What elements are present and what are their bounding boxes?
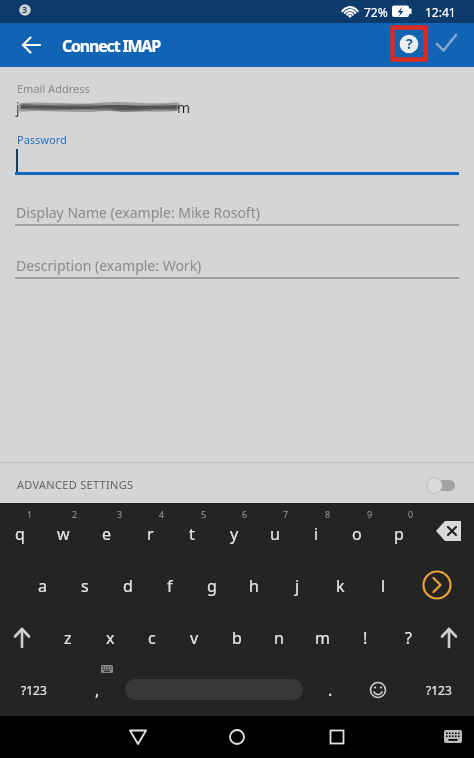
staticText: n [274, 627, 284, 649]
staticText: 1 [27, 508, 33, 520]
staticText: v [190, 627, 199, 649]
staticText: q [15, 523, 25, 545]
staticText: r [147, 523, 154, 545]
staticText: Connect IMAP [62, 35, 160, 57]
button[interactable]: ! [343, 614, 387, 662]
button[interactable] [0, 614, 44, 662]
button[interactable]: x [88, 614, 132, 662]
button[interactable] [428, 511, 472, 555]
button[interactable] [125, 679, 303, 700]
button[interactable] [0, 197, 474, 227]
staticText: l [381, 575, 386, 597]
button[interactable]: c [130, 614, 174, 662]
button[interactable] [0, 251, 474, 281]
button[interactable]: ? [386, 614, 430, 662]
staticText: ? [405, 627, 412, 649]
button[interactable] [0, 95, 474, 135]
staticText: d [123, 575, 133, 597]
button[interactable]: ? [393, 27, 425, 59]
staticText: h [249, 575, 259, 597]
staticText: ?123 [426, 682, 452, 698]
staticText: 12:41 [425, 4, 456, 20]
button[interactable]: ?123 [12, 666, 56, 714]
button[interactable]: p [377, 510, 421, 558]
staticText: 7 [283, 508, 289, 520]
staticText: j [295, 575, 300, 597]
button[interactable] [215, 716, 259, 758]
staticText: Password [17, 132, 67, 147]
button[interactable] [432, 29, 464, 61]
staticText: Email Address [17, 81, 90, 96]
staticText: Display Name (example: Mike Rosoft) [16, 203, 260, 222]
staticText: 4 [159, 508, 165, 520]
button[interactable]: t [170, 510, 214, 558]
button[interactable]: q [0, 510, 42, 558]
staticText: . [328, 679, 333, 701]
button[interactable]: z [46, 614, 90, 662]
button[interactable]: m [300, 614, 344, 662]
button[interactable]: ?123 [417, 666, 461, 714]
button[interactable]: u [253, 510, 297, 558]
staticText: ?123 [21, 682, 47, 698]
button[interactable]: , [75, 666, 119, 714]
button[interactable]: y [212, 510, 256, 558]
button[interactable] [315, 716, 359, 758]
staticText: g [207, 575, 217, 597]
staticText: i [314, 523, 319, 545]
staticText: m [315, 627, 330, 649]
staticText: 3 [117, 508, 123, 520]
staticText: 0 [408, 508, 414, 520]
staticText: o [352, 523, 362, 545]
button[interactable]: l [361, 562, 405, 610]
button[interactable]: k [318, 562, 362, 610]
staticText: 6 [242, 508, 248, 520]
button[interactable]: v [172, 614, 216, 662]
button[interactable] [0, 147, 474, 175]
staticText: y [230, 523, 239, 545]
button[interactable]: ADVANCED SETTINGS [0, 463, 474, 503]
staticText: j [16, 98, 20, 117]
staticText: s [81, 575, 89, 597]
staticText: k [336, 575, 345, 597]
button[interactable] [0, 23, 48, 67]
staticText: u [270, 523, 280, 545]
staticText: z [64, 627, 72, 649]
staticText: f [167, 575, 173, 597]
staticText: 3 [22, 3, 28, 15]
button[interactable]: . [308, 666, 352, 714]
staticText: e [102, 523, 112, 545]
button[interactable]: d [106, 562, 150, 610]
staticText: 9 [367, 508, 373, 520]
button[interactable]: f [148, 562, 192, 610]
button[interactable] [415, 563, 459, 607]
button[interactable]: o [335, 510, 379, 558]
button[interactable]: e [85, 510, 129, 558]
staticText: 5 [201, 508, 207, 520]
staticText: 72% [364, 4, 388, 20]
staticText: ADVANCED SETTINGS [17, 477, 134, 492]
staticText: 2 [72, 508, 78, 520]
button[interactable] [116, 716, 160, 758]
button[interactable]: w [41, 510, 85, 558]
button[interactable] [427, 614, 471, 662]
staticText: x [106, 627, 115, 649]
button[interactable]: n [257, 614, 301, 662]
staticText: t [189, 523, 195, 545]
staticText: ! [363, 627, 368, 649]
button[interactable] [356, 668, 400, 712]
button[interactable]: j [275, 562, 319, 610]
staticText: Description (example: Work) [16, 256, 202, 275]
button[interactable]: s [63, 562, 107, 610]
button[interactable]: r [128, 510, 172, 558]
button[interactable]: h [232, 562, 276, 610]
button[interactable]: a [20, 562, 64, 610]
button[interactable]: b [215, 614, 259, 662]
staticText: , [95, 679, 100, 701]
staticText: ? [406, 34, 413, 53]
staticText: b [232, 627, 242, 649]
staticText: c [148, 627, 156, 649]
button[interactable]: i [294, 510, 338, 558]
button[interactable] [440, 716, 470, 758]
button[interactable]: g [190, 562, 234, 610]
staticText: 8 [325, 508, 331, 520]
